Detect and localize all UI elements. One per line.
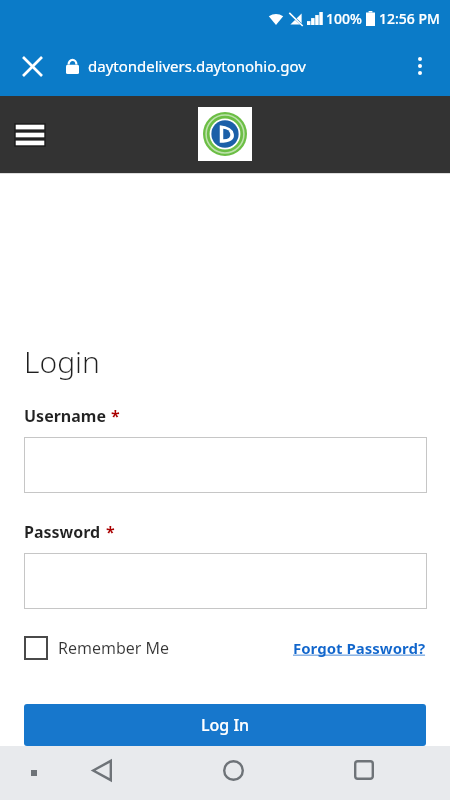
button[interactable]: Log In	[24, 704, 426, 746]
staticText: Password	[24, 521, 101, 543]
button[interactable]	[24, 553, 427, 609]
button[interactable]: Recent apps	[340, 746, 388, 794]
button[interactable]: Home	[209, 746, 257, 794]
staticText: Log In	[201, 714, 250, 736]
button[interactable]: Close	[8, 42, 56, 90]
staticText: *	[106, 521, 115, 543]
button[interactable]: Dayton Delivers logo	[198, 107, 252, 161]
staticText: 100%	[326, 9, 362, 28]
button[interactable]: More options	[396, 42, 444, 90]
staticText: 12:56 PM	[379, 9, 440, 28]
staticText: Login	[24, 341, 100, 382]
button[interactable]: Remember Me	[24, 636, 170, 660]
staticText: daytondelivers.daytonohio.gov	[88, 56, 306, 76]
staticText: *	[111, 405, 120, 427]
button[interactable]: Back	[78, 746, 126, 794]
button[interactable]	[24, 437, 427, 493]
staticText: Username	[24, 405, 106, 427]
staticText: Forgot Password?	[293, 638, 426, 658]
button[interactable]: Hide keyboard	[18, 757, 50, 789]
staticText: Remember Me	[58, 637, 170, 659]
button[interactable]: Menu	[6, 111, 54, 159]
button[interactable]: Forgot Password?	[293, 638, 426, 658]
